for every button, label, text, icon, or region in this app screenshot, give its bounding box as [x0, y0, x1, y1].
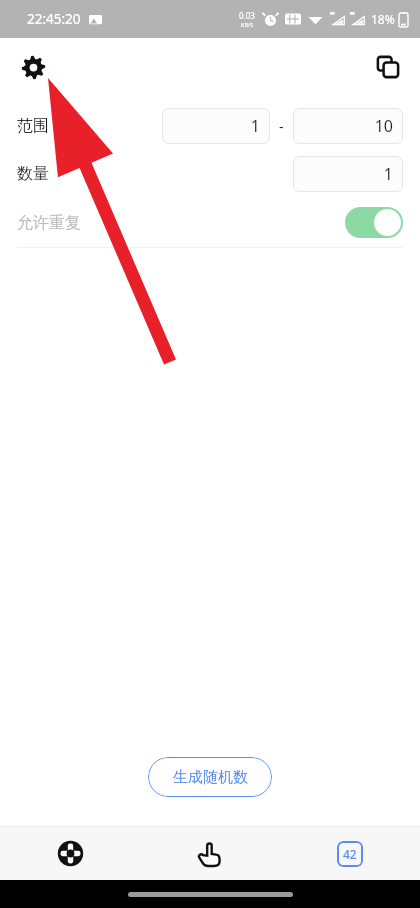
button[interactable]: Tap [140, 827, 280, 880]
button[interactable]: 允许重复 [17, 198, 403, 247]
staticText: 42 [343, 846, 357, 862]
button[interactable]: 1 [293, 156, 403, 192]
staticText: KB/S [241, 21, 254, 28]
button[interactable]: 生成随机数 [148, 757, 272, 797]
staticText: 数量 [17, 164, 49, 184]
staticText: 允许重复 [17, 213, 81, 233]
button[interactable]: 1 [162, 108, 270, 144]
button[interactable]: 10 [293, 108, 403, 144]
staticText: 10 [374, 115, 393, 137]
button[interactable]: Random [0, 827, 140, 880]
staticText: 0.03 [239, 10, 255, 21]
button[interactable]: Number [280, 827, 420, 880]
staticText: - [279, 117, 284, 136]
staticText: 1 [250, 115, 260, 137]
button[interactable]: Copy [367, 46, 409, 88]
button[interactable]: Settings [12, 46, 54, 88]
button[interactable] [345, 207, 403, 238]
staticText: 生成随机数 [173, 768, 248, 787]
staticText: 范围 [17, 116, 49, 136]
staticText: 18% [371, 11, 395, 27]
staticText: 22:45:20 [27, 10, 81, 28]
staticText: 1 [383, 163, 393, 185]
